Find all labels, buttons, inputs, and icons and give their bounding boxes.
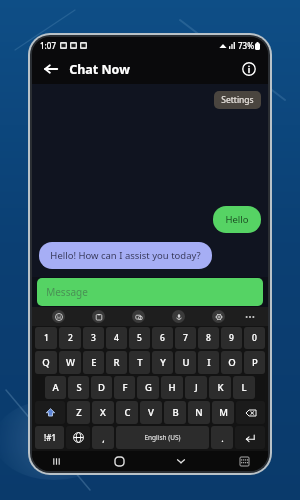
button[interactable]: Change language (66, 426, 90, 449)
staticText: P (252, 356, 258, 369)
button[interactable]: . (211, 426, 233, 449)
staticText: 9 (229, 332, 234, 344)
button[interactable]: 2 (59, 327, 81, 349)
staticText: B (172, 406, 179, 419)
button[interactable]: K (209, 376, 231, 399)
button[interactable]: M (212, 401, 234, 424)
staticText: E (91, 356, 97, 369)
button[interactable]: S (68, 376, 89, 399)
button[interactable]: Hello (213, 206, 261, 233)
button[interactable]: Recents (46, 451, 66, 471)
staticText: 7 (183, 332, 188, 344)
button[interactable]: G (137, 376, 159, 399)
staticText: R (113, 356, 120, 369)
staticText: S (76, 381, 82, 394)
staticText: V (148, 406, 154, 419)
staticText: Settings (221, 94, 254, 106)
button[interactable]: GIF (118, 307, 158, 326)
button[interactable]: Voice input (158, 307, 198, 326)
staticText: Chat Now (69, 61, 130, 78)
button[interactable]: Z (67, 401, 90, 424)
staticText: Hello! How can I assist you today? (50, 249, 201, 262)
button[interactable]: Stickers (78, 307, 118, 326)
button[interactable]: Backspace (236, 401, 265, 424)
staticText: , (102, 432, 105, 444)
staticText: 73% (238, 40, 254, 51)
button[interactable]: Info (239, 59, 259, 79)
button[interactable]: O (221, 351, 242, 374)
button[interactable]: U (175, 351, 196, 374)
button[interactable]: More options (238, 307, 262, 326)
button[interactable]: 1 (35, 327, 57, 349)
staticText: Y (160, 356, 166, 369)
button[interactable]: T (129, 351, 150, 374)
button[interactable]: P (244, 351, 265, 374)
button[interactable]: Emoji (38, 307, 78, 326)
button[interactable]: A (45, 376, 66, 399)
button[interactable]: Back (41, 59, 61, 79)
button[interactable]: Q (35, 351, 57, 374)
staticText: 1 (44, 332, 49, 344)
staticText: C (124, 406, 131, 419)
button[interactable]: H (161, 376, 183, 399)
staticText: K (217, 381, 224, 394)
button[interactable]: 0 (244, 327, 265, 349)
button[interactable]: Hide keyboard (171, 451, 191, 471)
button[interactable]: 7 (175, 327, 196, 349)
button[interactable]: L (233, 376, 255, 399)
button[interactable]: Message (37, 278, 263, 306)
button[interactable]: Settings (214, 91, 261, 109)
button[interactable]: !#1 (35, 426, 64, 449)
button[interactable]: J (185, 376, 207, 399)
staticText: 8 (206, 332, 211, 344)
button[interactable]: B (164, 401, 186, 424)
staticText: W (66, 356, 75, 369)
staticText: Message (46, 285, 88, 299)
button[interactable]: E (83, 351, 104, 374)
staticText: G (145, 381, 152, 394)
button[interactable]: D (91, 376, 112, 399)
button[interactable]: R (106, 351, 127, 374)
button[interactable]: 9 (221, 327, 242, 349)
staticText: O (228, 356, 236, 369)
button[interactable]: Hello! How can I assist you today? (39, 242, 212, 269)
staticText: 0 (252, 332, 257, 344)
staticText: Z (76, 406, 82, 419)
staticText: D (98, 381, 105, 394)
staticText: Hello (225, 213, 249, 226)
button[interactable]: F (114, 376, 135, 399)
button[interactable]: X (92, 401, 114, 424)
button[interactable]: 5 (129, 327, 150, 349)
button[interactable]: Keyboard settings (198, 307, 238, 326)
button[interactable]: English (US) (116, 426, 209, 449)
button[interactable]: 6 (152, 327, 173, 349)
button[interactable]: N (188, 401, 210, 424)
staticText: T (137, 356, 143, 369)
button[interactable]: Y (152, 351, 173, 374)
button[interactable]: 4 (106, 327, 127, 349)
staticText: 6 (160, 332, 165, 344)
staticText: English (US) (144, 433, 181, 442)
staticText: . (221, 432, 224, 444)
staticText: 3 (91, 332, 96, 344)
button[interactable]: V (140, 401, 162, 424)
staticText: U (182, 356, 190, 369)
button[interactable]: Enter (235, 426, 265, 449)
staticText: A (52, 381, 59, 394)
staticText: N (195, 406, 203, 419)
staticText: 1:07 (40, 40, 56, 51)
button[interactable]: Shift (35, 401, 65, 424)
button[interactable]: W (59, 351, 81, 374)
staticText: F (122, 381, 128, 394)
button[interactable]: C (116, 401, 138, 424)
button[interactable]: I (198, 351, 219, 374)
button[interactable]: , (92, 426, 114, 449)
button[interactable]: 8 (198, 327, 219, 349)
staticText: 4 (114, 332, 119, 344)
staticText: L (241, 381, 247, 394)
staticText: 2 (68, 332, 73, 344)
button[interactable]: Keyboard layout (234, 451, 254, 471)
staticText: J (195, 381, 198, 394)
button[interactable]: 3 (83, 327, 104, 349)
button[interactable]: Home (109, 451, 129, 471)
